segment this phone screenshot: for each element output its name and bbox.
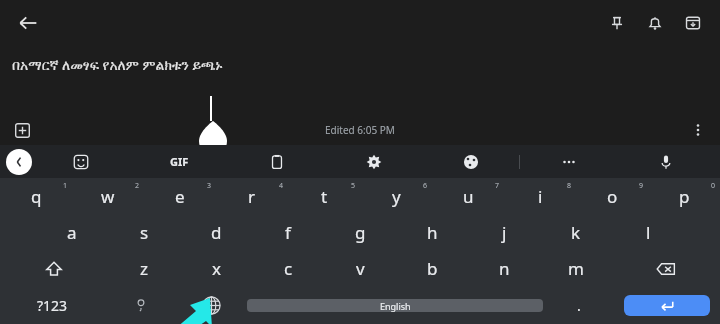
staticText: l [646, 221, 651, 244]
button[interactable]: Back [8, 3, 48, 43]
button[interactable]: g [324, 214, 396, 250]
staticText: c [284, 257, 293, 280]
button[interactable]: y [360, 178, 432, 214]
staticText: GIF [170, 154, 189, 169]
button[interactable]: More [520, 145, 617, 178]
staticText: g [355, 221, 366, 244]
button[interactable]: n [468, 250, 540, 287]
staticText: u [463, 185, 474, 208]
staticText: English [380, 300, 411, 312]
button[interactable]: Change language [176, 287, 247, 324]
staticText: y [392, 185, 401, 208]
button[interactable]: f [252, 214, 324, 250]
button[interactable]: Emoji [32, 145, 130, 178]
button[interactable]: w [72, 178, 144, 214]
button[interactable]: Settings [325, 145, 422, 178]
staticText: n [499, 257, 510, 280]
button[interactable]: t [288, 178, 360, 214]
button[interactable]: o [576, 178, 648, 214]
staticText: 5 [351, 181, 356, 191]
button[interactable]: e [144, 178, 216, 214]
staticText: k [571, 221, 581, 244]
staticText: s [140, 221, 149, 244]
button[interactable]: Reminder [636, 4, 674, 42]
staticText: p [679, 185, 690, 208]
button[interactable]: j [468, 214, 540, 250]
button[interactable]: Add [8, 116, 36, 144]
staticText: q [31, 185, 42, 208]
button[interactable]: h [396, 214, 468, 250]
button[interactable]: Backspace [612, 250, 720, 287]
button[interactable]: Shift [0, 250, 108, 287]
button[interactable]: r [216, 178, 288, 214]
button[interactable]: Expand [6, 149, 32, 175]
button[interactable]: b [396, 250, 468, 287]
staticText: 8 [567, 181, 572, 191]
button[interactable]: m [540, 250, 612, 287]
button[interactable]: English [247, 299, 543, 312]
staticText: 1 [63, 181, 68, 191]
staticText: b [427, 257, 438, 280]
staticText: . [577, 296, 581, 315]
button[interactable]: Clipboard [228, 145, 325, 178]
staticText: 7 [495, 181, 500, 191]
button[interactable]: Pin [598, 4, 636, 42]
staticText: 2 [135, 181, 140, 191]
staticText: z [140, 257, 148, 280]
staticText: a [67, 221, 77, 244]
staticText: o [607, 185, 618, 208]
button[interactable]: Enter [624, 295, 710, 316]
button[interactable]: Voice input [617, 145, 714, 178]
staticText: በአማርኛ ለመፃፍ የአለም ምልክቱን ይጫኑ [12, 55, 223, 74]
staticText: 3 [207, 181, 212, 191]
staticText: m [568, 257, 584, 280]
staticText: ?123 [37, 296, 68, 315]
staticText: i [538, 185, 543, 208]
button[interactable]: z [108, 250, 180, 287]
button[interactable]: v [324, 250, 396, 287]
button[interactable]: a [36, 214, 108, 250]
staticText: e [175, 185, 185, 208]
button[interactable]: Theme [422, 145, 519, 178]
button[interactable]: q [0, 178, 72, 214]
staticText: v [356, 257, 365, 280]
button[interactable]: ?123 [0, 287, 105, 324]
staticText: d [211, 221, 222, 244]
staticText: r [248, 185, 256, 208]
staticText: 4 [279, 181, 284, 191]
button[interactable]: Comma [105, 287, 176, 324]
button[interactable]: u [432, 178, 504, 214]
button[interactable]: More options [684, 116, 712, 144]
button[interactable]: i [504, 178, 576, 214]
staticText: 9 [639, 181, 644, 191]
button[interactable]: d [180, 214, 252, 250]
button[interactable]: Archive [674, 4, 712, 42]
staticText: 6 [423, 181, 428, 191]
button[interactable]: Period [543, 287, 614, 324]
staticText: f [285, 221, 291, 244]
button[interactable]: GIF [130, 145, 228, 178]
button[interactable]: p [648, 178, 720, 214]
button[interactable]: c [252, 250, 324, 287]
staticText: w [101, 185, 115, 208]
button[interactable]: l [612, 214, 684, 250]
button[interactable]: k [540, 214, 612, 250]
staticText: h [427, 221, 438, 244]
button[interactable]: x [180, 250, 252, 287]
staticText: j [502, 221, 507, 244]
staticText: x [212, 257, 221, 280]
staticText: t [321, 185, 328, 208]
staticText: Edited 6:05 PM [325, 123, 395, 137]
staticText: 0 [711, 181, 716, 191]
button[interactable]: s [108, 214, 180, 250]
